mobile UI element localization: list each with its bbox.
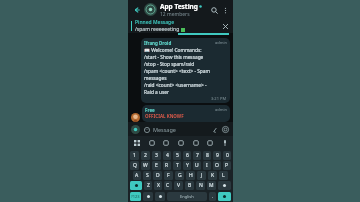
staticText: 9 [216,152,219,159]
button[interactable]: Ifrang Droid [141,38,230,103]
button[interactable]: 6 [183,151,191,160]
button[interactable]: Keyboard tool 4 [176,138,185,147]
button[interactable]: Emoji [143,192,153,201]
button[interactable]: J [197,171,206,180]
button[interactable]: W [141,161,150,170]
staticText: Pinned Message [135,19,175,26]
button[interactable]: Shift [130,181,142,190]
button[interactable]: Numbers [130,192,141,201]
staticText: English [180,194,194,199]
staticText: A [135,172,139,179]
staticText: R [165,162,169,169]
staticText: O [215,162,219,169]
staticText: E [155,162,158,169]
button[interactable]: App Testing [160,2,208,18]
button[interactable]: Bot menu [131,125,140,134]
button[interactable]: Keyboard tool 6 [205,138,214,147]
staticText: W [143,162,148,169]
staticText: Free [145,107,155,113]
staticText: ?123 [131,194,140,199]
button[interactable]: 0 [223,151,231,160]
button[interactable]: Keyboard tool 3 [161,138,170,147]
staticText: X [157,182,160,189]
button[interactable]: Y [183,161,191,170]
button[interactable]: 2 [141,151,150,160]
button[interactable]: 5 [173,151,181,160]
button[interactable]: M [207,181,216,190]
button[interactable]: H [186,171,195,180]
button[interactable]: K [208,171,217,180]
staticText: Ifrang Droid [144,40,172,46]
button[interactable]: U [193,161,201,170]
button[interactable]: More options [220,5,230,15]
staticText: V [177,182,181,189]
button[interactable]: Q [130,161,139,170]
staticText: K [211,172,215,179]
button[interactable]: P [223,161,231,170]
button[interactable]: Voice [155,192,165,201]
staticText: App Testing [160,2,198,11]
button[interactable]: Keyboard tool 7 [220,138,229,147]
staticText: J [201,172,203,179]
button[interactable]: Keyboard tool 2 [147,138,156,147]
button[interactable]: Emoji [142,125,151,134]
staticText: 7 [196,152,199,159]
button[interactable]: Enter [218,192,231,201]
staticText: admin [215,107,227,112]
button[interactable]: N [196,181,205,190]
button[interactable]: 7 [193,151,201,160]
button[interactable]: L [219,171,228,180]
button[interactable]: Pinned Message [128,19,233,33]
staticText: 2 [144,152,147,159]
button[interactable]: R [163,161,171,170]
button[interactable]: Keyboard tool 1 [132,138,141,147]
staticText: U [195,162,199,169]
staticText: Raid a user [144,89,169,96]
button[interactable]: Search [208,4,220,16]
button[interactable]: 1 [130,151,139,160]
button[interactable]: O [213,161,221,170]
staticText: /start - Show this message [144,54,204,61]
staticText: S [146,172,149,179]
staticText: Z [147,182,150,189]
button[interactable]: D [153,171,162,180]
button[interactable]: Back [131,4,142,15]
button[interactable]: 9 [213,151,221,160]
button[interactable]: G [175,171,184,180]
button[interactable]: C [164,181,172,190]
button[interactable]: S [143,171,151,180]
button[interactable]: 4 [163,151,171,160]
button[interactable]: Camera [220,124,230,134]
button[interactable]: V [174,181,183,190]
staticText: . [212,194,214,199]
staticText: messages [144,75,167,82]
button[interactable]: Attach [210,125,219,134]
button[interactable]: Close pinned [221,22,230,31]
staticText: D [156,172,160,179]
staticText: /stop - Stop spam/raid [144,61,195,68]
button[interactable]: Group photo [144,3,157,16]
button[interactable]: Z [144,181,152,190]
button[interactable]: X [154,181,162,190]
button[interactable]: A [133,171,141,180]
staticText: 3:21 PM [211,96,227,101]
staticText: M [209,182,214,189]
button[interactable]: English [167,192,207,201]
staticText: G [178,172,182,179]
staticText: /spam reeeeeeting [135,26,180,33]
button[interactable]: Free [142,105,230,122]
button[interactable]: E [152,161,161,170]
button[interactable]: F [164,171,173,180]
button[interactable]: 3 [152,151,161,160]
button[interactable]: Period [209,192,216,201]
button[interactable]: 8 [203,151,211,160]
button[interactable]: Backspace [218,181,231,190]
button[interactable]: Message [153,126,210,133]
button[interactable]: T [173,161,181,170]
button[interactable]: B [185,181,194,190]
button[interactable]: I [203,161,211,170]
staticText: F [167,172,170,179]
button[interactable]: Keyboard tool 5 [191,138,200,147]
staticText: 1 [133,152,136,159]
